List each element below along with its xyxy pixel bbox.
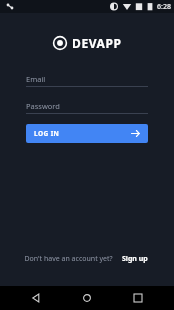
staticText: Sign up (122, 254, 148, 264)
staticText: DEVAPP (72, 35, 122, 51)
button[interactable]: Sign up (120, 252, 150, 266)
button[interactable]: Password (26, 98, 148, 114)
staticText: Password (26, 101, 60, 111)
staticText: Email (26, 74, 46, 84)
button[interactable]: Back (21, 286, 51, 310)
button[interactable]: LOG IN (26, 124, 148, 143)
button[interactable]: Home (72, 286, 102, 310)
button[interactable]: Email (26, 71, 148, 87)
button[interactable]: Recent apps (123, 286, 153, 310)
staticText: 6:28 (157, 2, 171, 12)
staticText: Don't have an account yet? (24, 254, 113, 264)
staticText: LOG IN (34, 129, 60, 138)
